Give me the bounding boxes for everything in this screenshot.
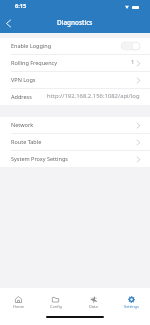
staticText: System Proxy Settings bbox=[11, 155, 68, 162]
staticText: VPN Logs bbox=[11, 76, 36, 83]
staticText: Address bbox=[11, 93, 32, 100]
button[interactable]: Back bbox=[0, 13, 17, 33]
button[interactable]: Address bbox=[0, 89, 150, 105]
button[interactable]: Rolling Frequency bbox=[0, 55, 150, 71]
staticText: Home bbox=[13, 304, 25, 309]
staticText: Settings bbox=[124, 304, 139, 309]
staticText: Data bbox=[89, 304, 98, 309]
staticText: 1 bbox=[131, 58, 135, 66]
staticText: Route Table bbox=[11, 138, 42, 145]
staticText: Network bbox=[11, 121, 34, 128]
button[interactable]: Settings bbox=[112, 288, 150, 312]
button[interactable]: Network bbox=[0, 117, 150, 133]
staticText: Enable Logging bbox=[11, 42, 52, 49]
button[interactable]: Enable Logging bbox=[0, 38, 150, 54]
button[interactable]: Config bbox=[37, 288, 74, 312]
staticText: Config bbox=[50, 304, 62, 309]
staticText: 6:15 bbox=[15, 2, 27, 10]
staticText: http://192.168.2.156:1082/api/log bbox=[47, 92, 140, 100]
button[interactable]: Route Table bbox=[0, 134, 150, 150]
button[interactable]: System Proxy Settings bbox=[0, 151, 150, 167]
staticText: Rolling Frequency bbox=[11, 59, 58, 66]
button[interactable]: VPN Logs bbox=[0, 72, 150, 88]
staticText: Diagnostics bbox=[57, 18, 93, 27]
button[interactable]: Home bbox=[0, 288, 37, 312]
button[interactable]: Data bbox=[74, 288, 112, 312]
